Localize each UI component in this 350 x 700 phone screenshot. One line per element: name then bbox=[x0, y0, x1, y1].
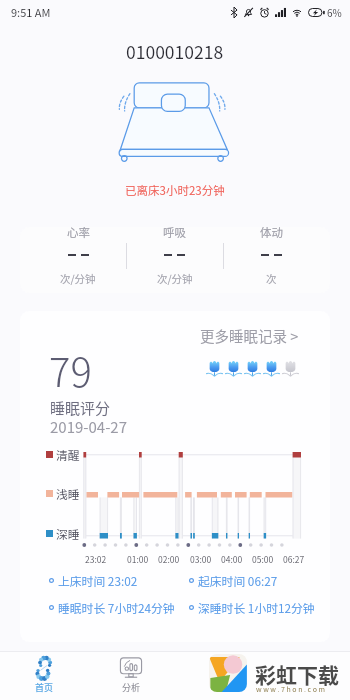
button[interactable]: 上床时间 23:02 bbox=[49, 572, 138, 589]
staticText: 心率 bbox=[67, 227, 90, 241]
staticText: 6% bbox=[327, 5, 342, 19]
staticText: 03:00 bbox=[190, 553, 212, 565]
button[interactable]: 更多睡眠记录 > bbox=[196, 321, 303, 350]
staticText: 更多睡眠记录 > bbox=[200, 325, 299, 346]
staticText: 23:02 bbox=[85, 553, 107, 565]
button[interactable]: 分析 bbox=[98, 651, 164, 700]
staticText: 睡眠评分 bbox=[50, 397, 111, 419]
staticText: 浅睡 bbox=[56, 485, 80, 502]
staticText: 01:00 bbox=[127, 553, 149, 565]
staticText: 79 bbox=[49, 341, 92, 399]
staticText: 次/分钟 bbox=[157, 271, 193, 286]
staticText: 05:00 bbox=[252, 553, 274, 565]
staticText: 9:51 AM bbox=[11, 4, 51, 20]
staticText: 0100010218 bbox=[126, 39, 224, 61]
button[interactable]: 首页 bbox=[11, 651, 77, 700]
staticText: 呼吸 bbox=[163, 227, 186, 241]
staticText: w w w . 7 h o n . c o m bbox=[256, 684, 325, 694]
button[interactable]: 起床时间 06:27 bbox=[189, 572, 278, 589]
staticText: 体动 bbox=[260, 227, 283, 241]
staticText: 04:00 bbox=[221, 553, 243, 565]
staticText: 睡眠时长 7小时24分钟 bbox=[58, 599, 175, 616]
staticText: 02:00 bbox=[158, 553, 180, 565]
staticText: 分析 bbox=[122, 681, 141, 694]
button[interactable]: 睡眠时长 7小时24分钟 bbox=[49, 599, 175, 616]
staticText: 06:27 bbox=[283, 553, 305, 565]
staticText: 2019-04-27 bbox=[50, 416, 128, 438]
staticText: 次 bbox=[266, 271, 277, 286]
staticText: 起床时间 06:27 bbox=[198, 572, 278, 589]
staticText: 深睡 bbox=[56, 525, 80, 542]
staticText: 清醒 bbox=[56, 446, 80, 463]
staticText: 上床时间 23:02 bbox=[58, 572, 138, 589]
staticText: 深睡时长 1小时12分钟 bbox=[198, 599, 315, 616]
staticText: 已离床3小时23分钟 bbox=[125, 182, 225, 198]
staticText: 彩虹下载 bbox=[255, 659, 339, 689]
staticText: 次/分钟 bbox=[60, 271, 96, 286]
staticText: 首页 bbox=[35, 681, 54, 694]
button[interactable]: 深睡时长 1小时12分钟 bbox=[189, 599, 315, 616]
